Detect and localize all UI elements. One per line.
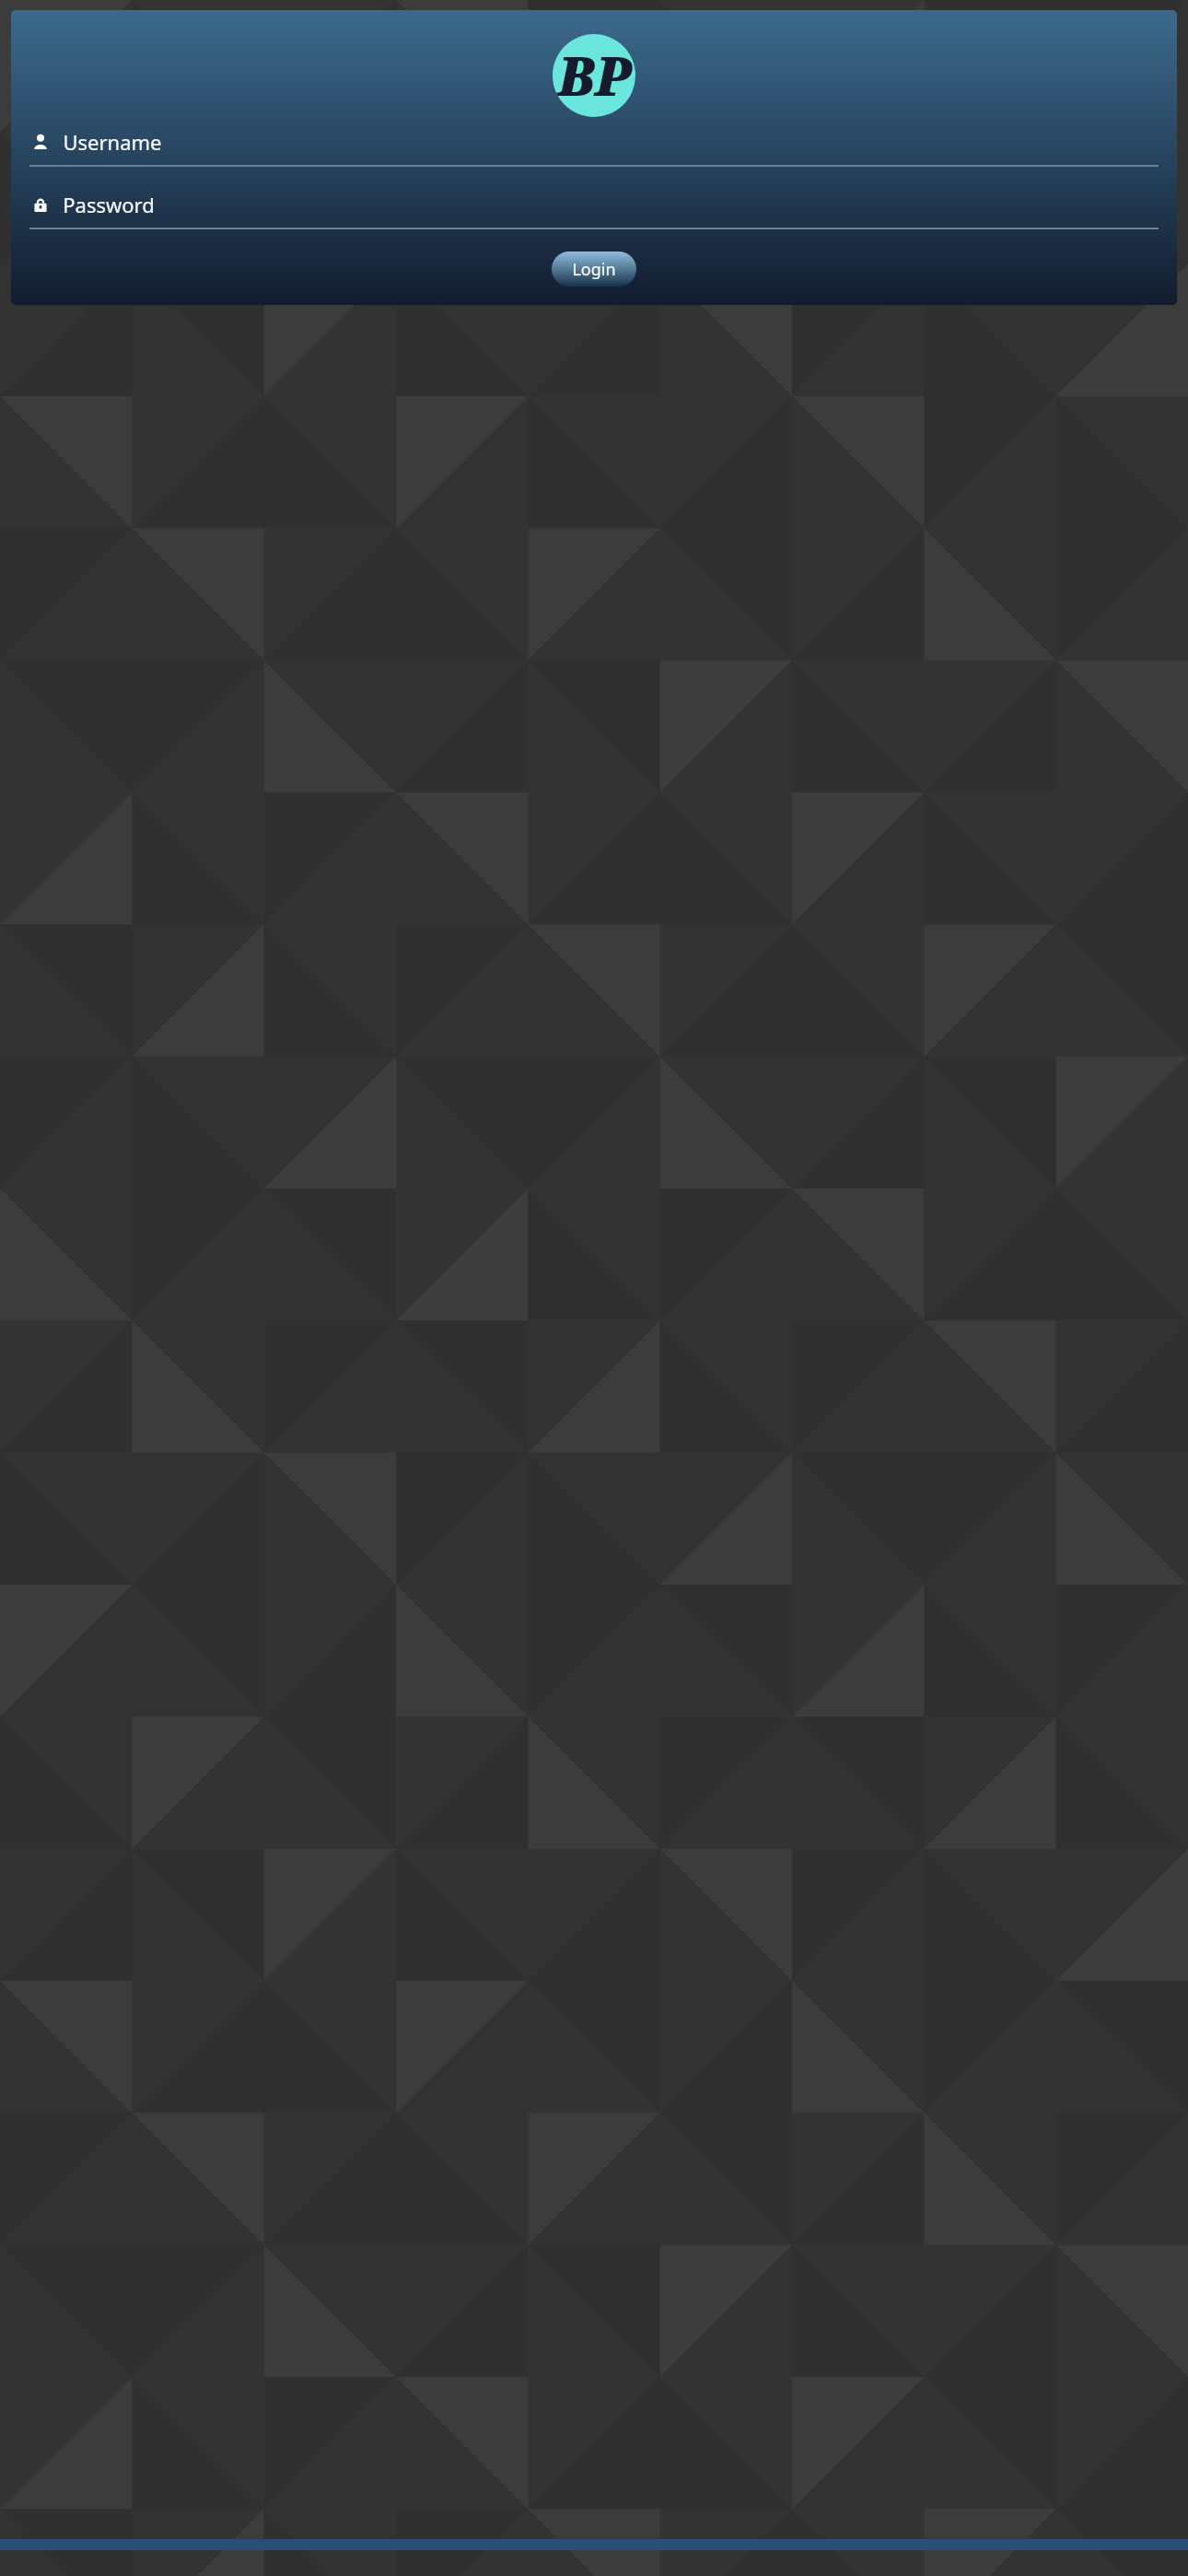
staticText: Username — [63, 128, 162, 156]
other: Username — [31, 133, 50, 151]
button[interactable]: Login — [552, 252, 636, 287]
button[interactable]: Password — [11, 191, 1177, 229]
other: Password — [31, 195, 50, 214]
button[interactable]: Username — [11, 128, 1177, 167]
staticText: Login — [572, 258, 616, 281]
staticText: Password — [63, 191, 155, 218]
staticText: BP — [557, 39, 632, 111]
